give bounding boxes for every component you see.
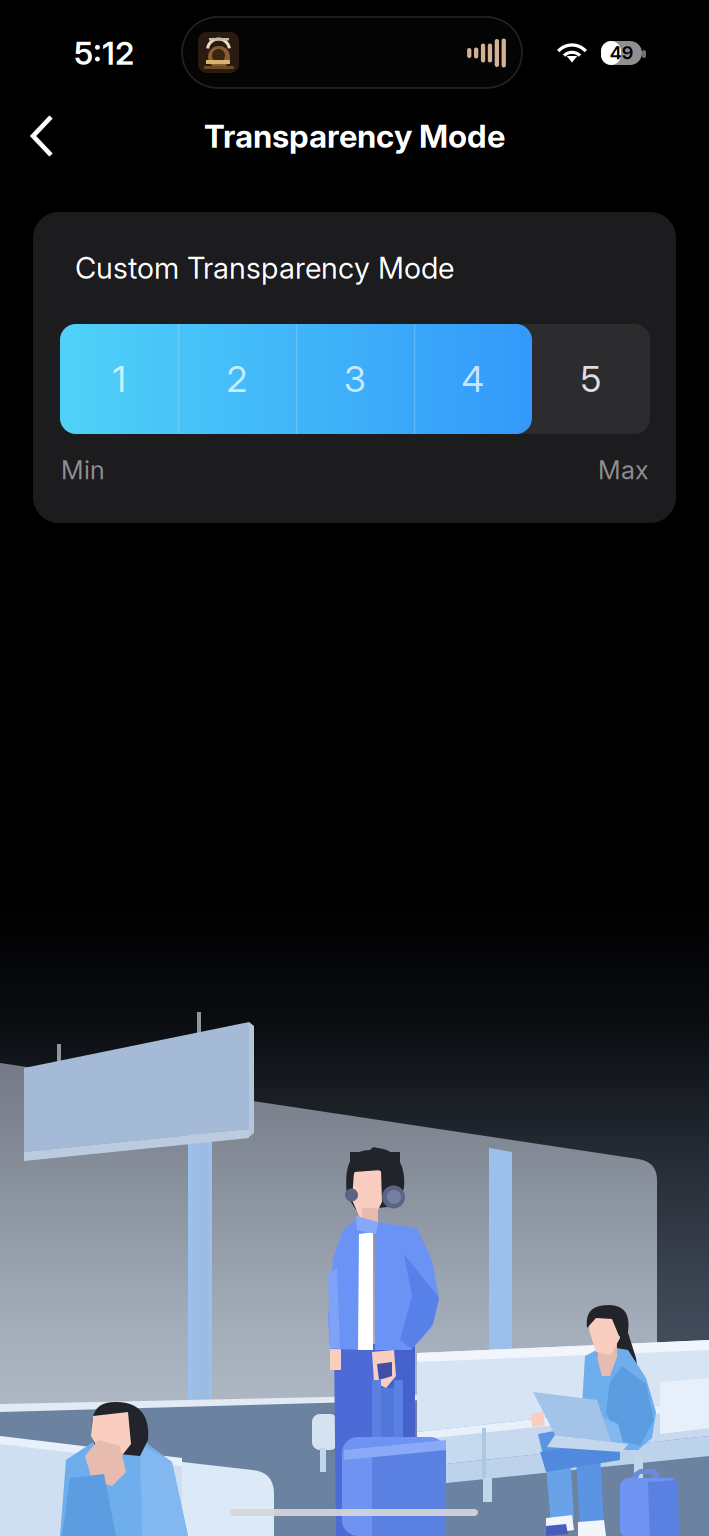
button[interactable]: 1	[60, 324, 178, 434]
staticText: 2	[226, 357, 247, 401]
staticText: Max	[598, 455, 649, 485]
staticText: Min	[61, 455, 105, 485]
button[interactable]: 5	[532, 324, 650, 434]
staticText: 3	[344, 357, 366, 401]
staticText: 5	[580, 357, 601, 401]
button[interactable]: Back	[12, 110, 70, 162]
staticText: 49	[609, 41, 633, 64]
staticText: 4	[461, 357, 484, 401]
button[interactable]: 2	[178, 324, 296, 434]
staticText: 5:12	[74, 34, 134, 72]
button[interactable]: 4	[414, 324, 532, 434]
staticText: Custom Transparency Mode	[75, 250, 454, 286]
staticText: 1	[112, 357, 125, 401]
button[interactable]: 3	[296, 324, 414, 434]
staticText: Transparency Mode	[204, 117, 505, 155]
